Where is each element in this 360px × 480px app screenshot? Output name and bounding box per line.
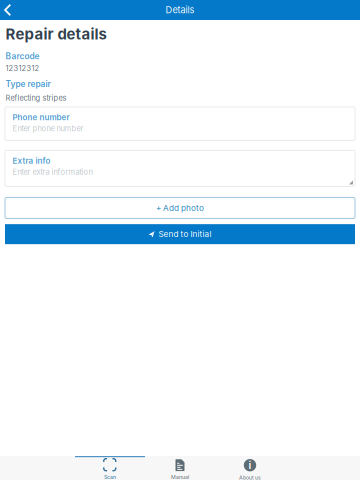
staticText: Phone number — [13, 113, 70, 122]
button[interactable]: i — [215, 456, 285, 480]
staticText: Extra info — [13, 156, 51, 166]
staticText: Repair details — [6, 25, 107, 43]
button[interactable]: Back — [0, 0, 20, 20]
button[interactable]: Send to Initial — [5, 224, 355, 244]
button[interactable]: Scan — [75, 456, 145, 480]
staticText: 12312312 — [6, 64, 40, 73]
staticText: Send to Initial — [158, 229, 211, 239]
staticText: About us — [239, 474, 261, 480]
button[interactable]: + Add photo — [5, 197, 355, 218]
staticText: i — [248, 459, 251, 471]
staticText: Reflecting stripes — [6, 93, 67, 102]
button[interactable]: Manual — [145, 456, 215, 480]
staticText: Details — [165, 4, 194, 15]
staticText: Barcode — [6, 51, 40, 61]
staticText: Enter phone number — [13, 124, 84, 133]
staticText: + Add photo — [156, 203, 204, 213]
staticText: Enter extra information — [13, 167, 93, 176]
staticText: Manual — [171, 474, 189, 480]
staticText: Type repair — [6, 79, 51, 89]
staticText: Scan — [104, 474, 116, 480]
